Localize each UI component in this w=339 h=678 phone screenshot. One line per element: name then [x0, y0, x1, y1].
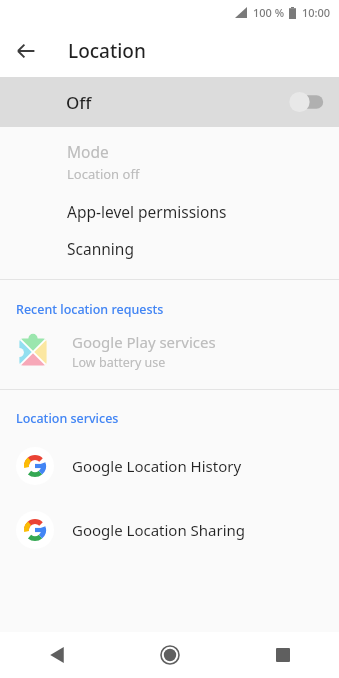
button[interactable]: Mode: [0, 137, 339, 187]
staticText: Google Location History: [72, 456, 242, 476]
staticText: Recent location requests: [16, 301, 164, 318]
staticText: Google Location Sharing: [72, 520, 246, 540]
staticText: Off: [66, 91, 92, 114]
button[interactable]: Scanning: [0, 228, 339, 265]
staticText: Location: [68, 38, 146, 64]
staticText: Mode: [67, 141, 109, 162]
button[interactable]: App-level permissions: [0, 187, 339, 228]
button[interactable]: Google Location History: [0, 431, 339, 489]
staticText: Location services: [16, 410, 119, 427]
button[interactable]: Back: [0, 632, 113, 678]
button[interactable]: Google Play services: [0, 322, 339, 377]
button[interactable]: Off: [0, 77, 339, 127]
staticText: Low battery use: [72, 354, 166, 371]
button[interactable]: Recent apps: [226, 632, 339, 678]
button[interactable]: Google Location Sharing: [0, 489, 339, 553]
button[interactable]: Home: [113, 632, 226, 678]
staticText: 10:00: [302, 5, 331, 20]
staticText: App-level permissions: [67, 201, 227, 222]
button[interactable]: Location toggle, off: [289, 91, 327, 113]
staticText: 100 %: [253, 5, 285, 20]
staticText: Scanning: [67, 238, 134, 259]
staticText: Google Play services: [72, 332, 216, 352]
staticText: Location off: [67, 165, 140, 183]
button[interactable]: Back: [6, 31, 46, 71]
